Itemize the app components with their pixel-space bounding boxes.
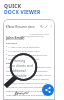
staticText: DOCX VIEWER xyxy=(4,9,41,16)
staticText: delivering measurable results for all xyxy=(6,81,48,84)
staticText: systems that power xyxy=(11,78,35,80)
staticText: PROFILE SUMMARY xyxy=(6,61,30,64)
staticText: A professional summary describing the xyxy=(6,65,51,68)
staticText: CONTACT xyxy=(6,41,18,44)
staticText: www.exampleportfolio.site xyxy=(8,57,39,60)
staticText: skills and experience across industry xyxy=(6,69,48,72)
staticText: QUICK xyxy=(4,3,22,10)
staticText: 16 Harbour Road East Wing xyxy=(8,49,40,52)
staticText: delivering results xyxy=(11,58,35,62)
staticText: the clients and partners involved in xyxy=(6,85,47,88)
staticText: Senior Developer xyxy=(6,38,25,41)
staticText: email@examplecompanymail.com xyxy=(8,53,48,56)
button[interactable]: Share xyxy=(42,84,54,96)
staticText: +1 555 0100 2345 extension xyxy=(8,45,40,48)
staticText: used while designin xyxy=(11,73,35,77)
staticText: New Resume.docx xyxy=(8,25,35,29)
button[interactable]: New Resume.docx xyxy=(3,19,55,100)
staticText: hello@example.com xyxy=(23,35,44,38)
staticText: and working with many different teams xyxy=(6,73,52,76)
staticText: on several large scale product launch xyxy=(6,77,49,80)
button[interactable]: More options xyxy=(49,24,54,29)
staticText: additional detail abo xyxy=(11,68,35,72)
staticText: additional detail about the approach xyxy=(6,89,48,92)
staticText: used while designing and building the xyxy=(6,93,50,96)
staticText: John Smith xyxy=(6,35,25,40)
staticText: the clients and part xyxy=(11,63,35,67)
button[interactable]: Edit xyxy=(44,24,49,29)
button[interactable]: Search xyxy=(39,24,44,29)
staticText: systems that power the applications xyxy=(6,97,48,100)
staticText: 19 September 2024 xyxy=(29,33,49,36)
